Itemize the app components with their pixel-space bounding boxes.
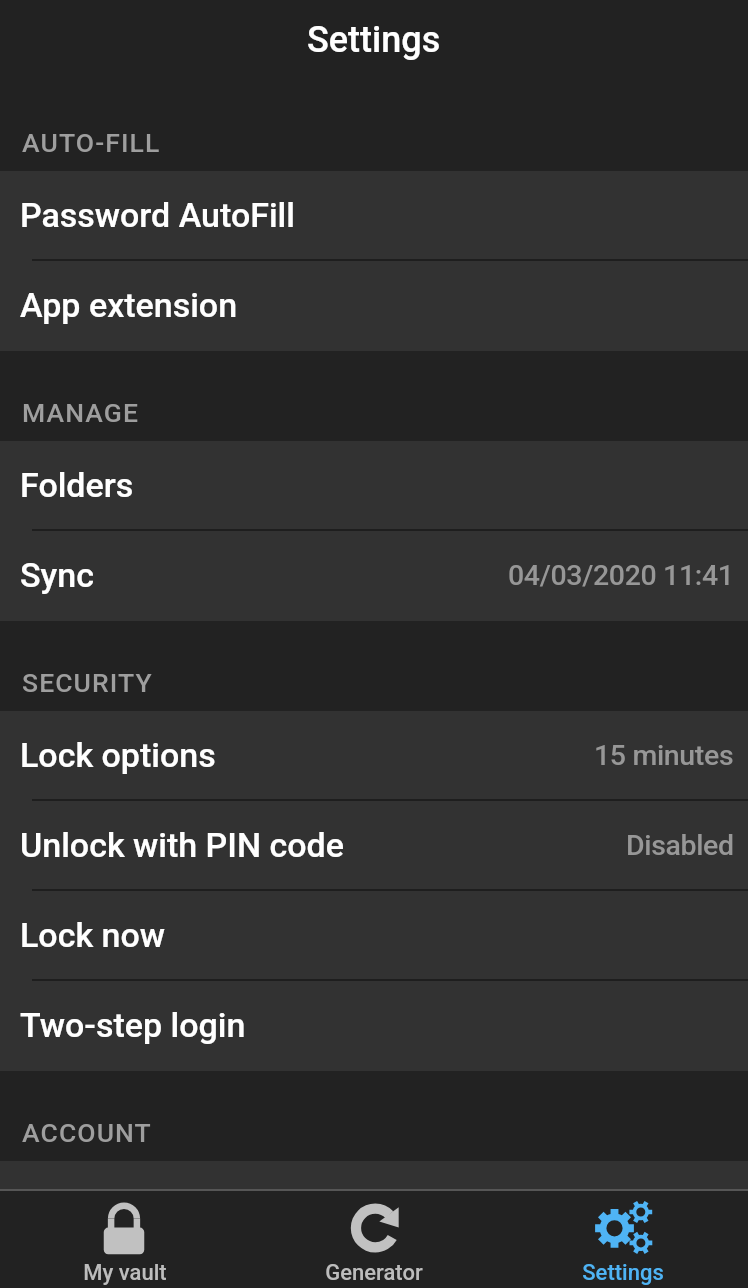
button[interactable]: Sync [0, 531, 748, 621]
button[interactable]: Lock now [0, 891, 748, 981]
staticText: Sync [20, 555, 94, 595]
staticText: Disabled [626, 829, 734, 862]
staticText: ACCOUNT [22, 1117, 152, 1148]
staticText: SECURITY [22, 667, 153, 698]
button[interactable]: Settings [498, 1189, 747, 1288]
staticText: MANAGE [22, 397, 140, 428]
button[interactable]: My vault [0, 1189, 249, 1288]
button[interactable]: Folders [0, 441, 748, 531]
staticText: Lock options [20, 735, 216, 775]
staticText: Generator [325, 1260, 423, 1286]
staticText: App extension [20, 285, 238, 325]
button[interactable]: Generator [249, 1189, 498, 1288]
staticText: Settings [307, 19, 441, 61]
staticText: Unlock with PIN code [20, 825, 344, 865]
staticText: Lock now [20, 915, 166, 955]
staticText: Two-step login [20, 1005, 246, 1045]
staticText: My vault [83, 1260, 167, 1286]
button[interactable]: Two-step login [0, 981, 748, 1071]
button[interactable]: Unlock with PIN code [0, 801, 748, 891]
staticText: Settings [582, 1260, 664, 1286]
staticText: 15 minutes [594, 739, 734, 772]
staticText: Password AutoFill [20, 195, 295, 235]
staticText: AUTO-FILL [22, 127, 161, 158]
staticText: Folders [20, 465, 134, 505]
staticText: 04/03/2020 11:41 [508, 559, 734, 592]
button[interactable]: Password AutoFill [0, 171, 748, 261]
button[interactable]: Lock options [0, 711, 748, 801]
button[interactable]: App extension [0, 261, 748, 351]
